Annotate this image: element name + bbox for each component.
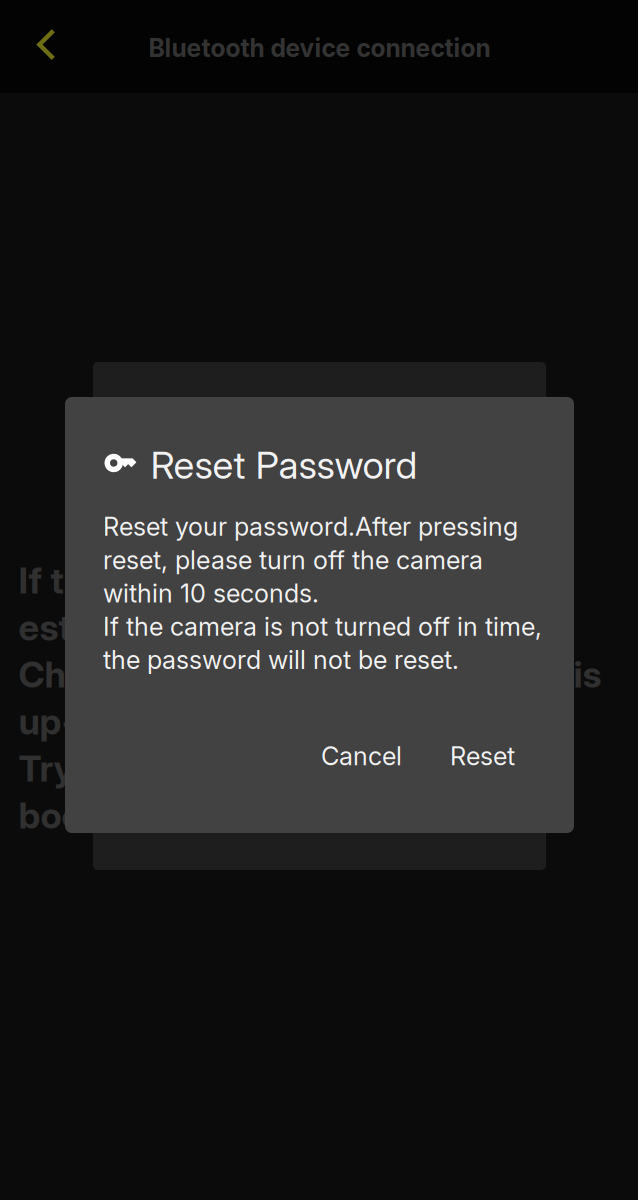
staticText: Cancel [321,741,402,771]
staticText: the password will not be reset. [103,644,459,675]
staticText: Try restarting the application or [18,747,548,790]
staticText: Reset your password.After pressing [103,511,518,542]
button[interactable]: Back [25,23,69,67]
staticText: If the device is not connected, [18,559,522,602]
staticText: If the camera is not turned off in time, [103,611,542,642]
staticText: booting the camera again. [18,794,455,837]
staticText: Check that your device firmware is [18,653,601,696]
staticText: Bluetooth device connection [148,33,490,63]
staticText: Reset [450,741,515,771]
staticText: up-to-date on both devices. [18,700,487,743]
staticText: Reset Password [150,442,417,488]
staticText: establish the pairing again. [18,606,470,649]
button[interactable]: Reset [427,725,537,787]
staticText: reset, please turn off the camera [103,545,483,575]
button[interactable]: Cancel [299,725,423,787]
staticText: within 10 seconds. [103,578,319,609]
